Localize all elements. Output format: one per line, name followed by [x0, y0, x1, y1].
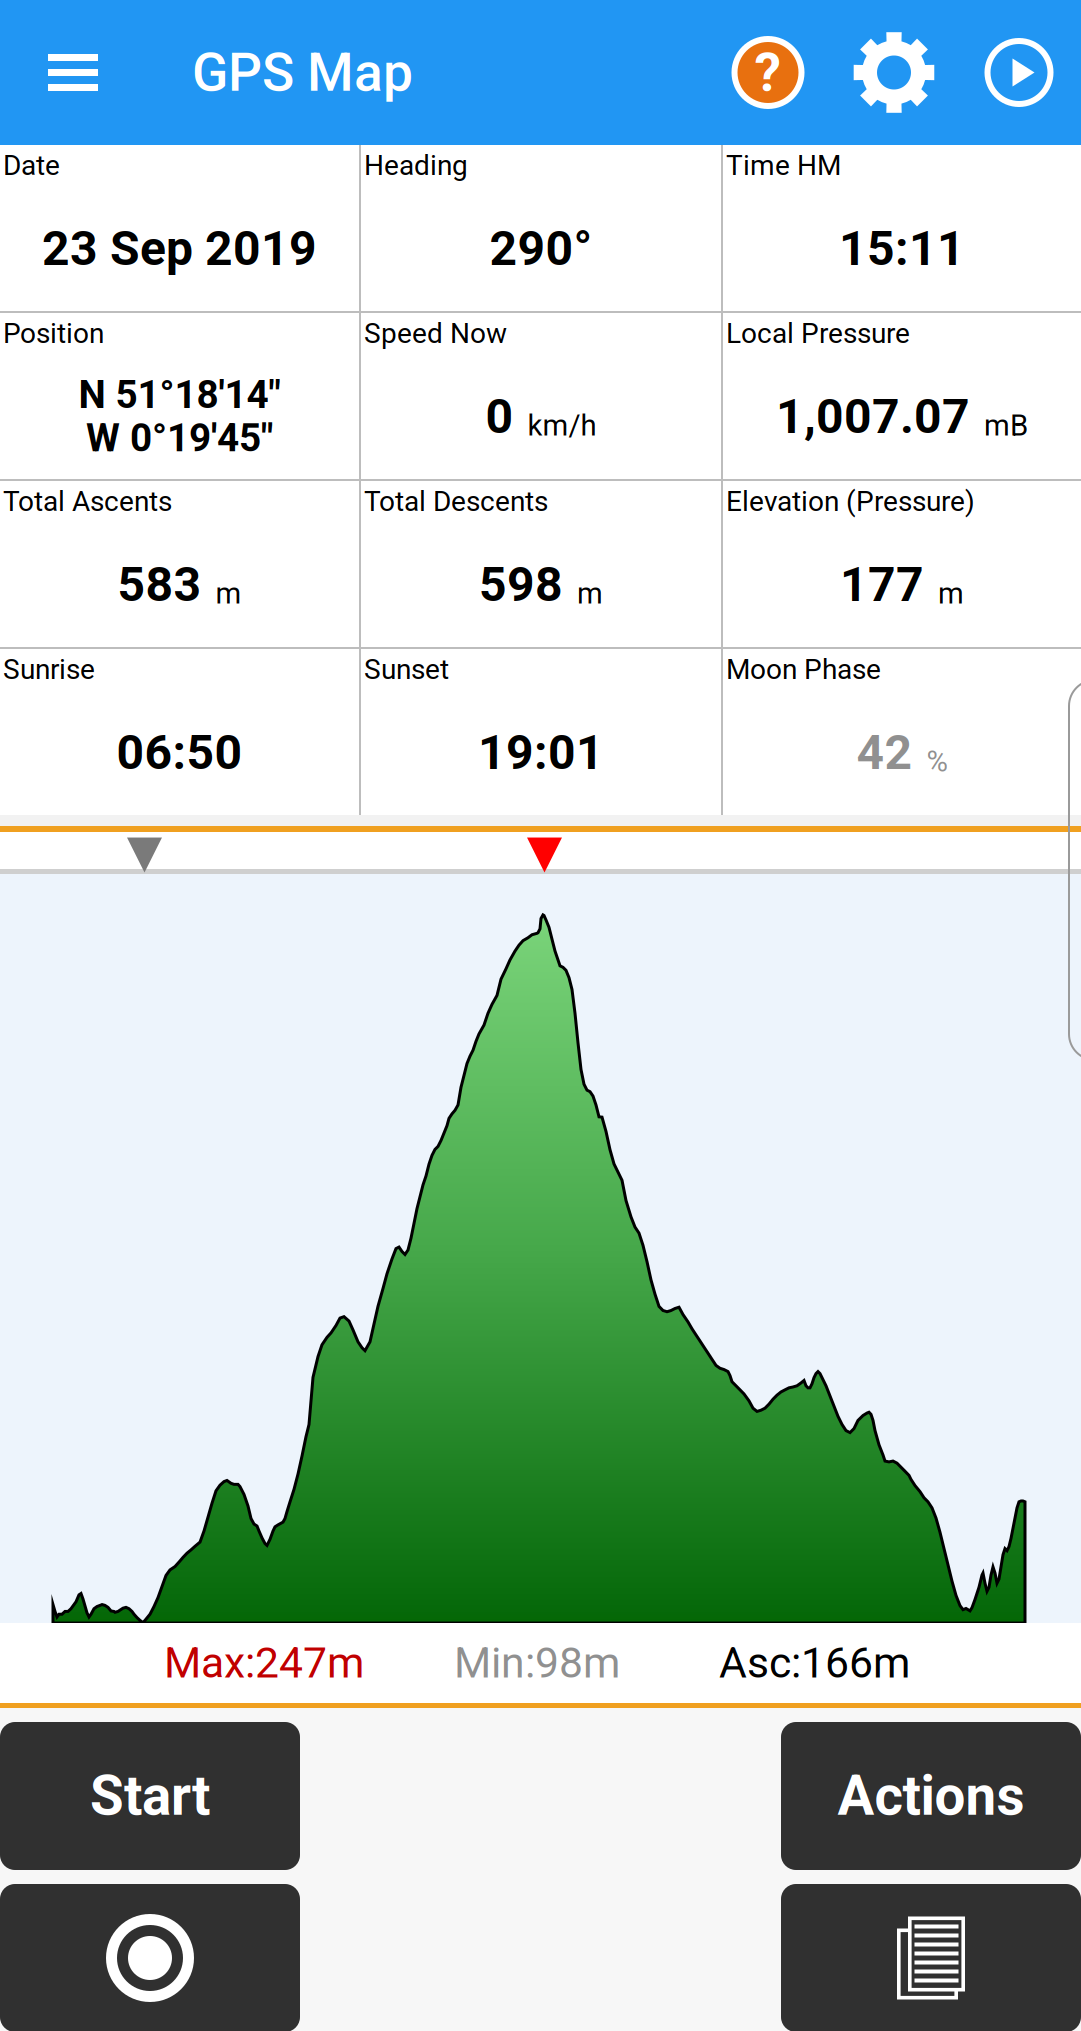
staticText: Date	[3, 149, 60, 182]
button[interactable]	[0, 1884, 300, 2031]
staticText: Total Descents	[364, 485, 548, 518]
staticText: Local Pressure	[726, 317, 910, 350]
button[interactable]: Help	[705, 0, 831, 145]
staticText: 598	[479, 556, 563, 613]
staticText: Time HM	[726, 149, 841, 182]
staticText: ?	[754, 41, 781, 104]
staticText: %	[912, 744, 947, 779]
staticText: m	[563, 576, 603, 611]
staticText: km/h	[513, 408, 596, 443]
staticText: mB	[970, 408, 1028, 443]
staticText: 1,007.07	[776, 388, 970, 445]
staticText: Sunset	[364, 653, 449, 686]
staticText: 290°	[489, 220, 592, 277]
staticText: GPS Map	[192, 41, 413, 104]
button[interactable]: Actions	[781, 1722, 1081, 1870]
staticText: 583	[117, 556, 201, 613]
button[interactable]: Start recording	[957, 0, 1081, 145]
staticText: 19:01	[478, 724, 604, 781]
staticText: Max:247m	[164, 1638, 364, 1688]
staticText: 15:11	[839, 220, 965, 277]
button[interactable]	[781, 1884, 1081, 2031]
button[interactable]: Start	[0, 1722, 300, 1870]
staticText: m	[201, 576, 241, 611]
staticText: Elevation (Pressure)	[726, 485, 975, 518]
staticText: Asc:166m	[719, 1638, 910, 1688]
staticText: 23 Sep 2019	[42, 220, 317, 277]
staticText: 177	[840, 556, 924, 613]
staticText: 42	[856, 724, 912, 781]
staticText: Speed Now	[364, 317, 507, 350]
staticText: Position	[3, 317, 104, 350]
staticText: N 51°18'14"	[78, 372, 280, 417]
staticText: m	[924, 576, 964, 611]
button[interactable]: Settings	[831, 0, 957, 145]
staticText: Heading	[364, 149, 468, 182]
staticText: W 0°19'45"	[86, 415, 273, 461]
staticText: 06:50	[116, 724, 242, 781]
staticText: Actions	[837, 1764, 1024, 1828]
button[interactable]: GPS Map	[146, 0, 413, 145]
button[interactable]: Menu	[0, 0, 146, 145]
staticText: Start	[90, 1764, 210, 1828]
staticText: Total Ascents	[3, 485, 172, 518]
staticText: 0	[485, 388, 513, 445]
staticText: Sunrise	[3, 653, 95, 686]
staticText: Moon Phase	[726, 653, 881, 686]
staticText: Min:98m	[454, 1638, 620, 1688]
